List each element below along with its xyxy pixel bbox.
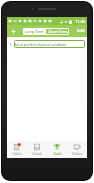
- staticText: Videos: [72, 152, 82, 156]
- staticText: Long Term: [25, 29, 44, 34]
- button[interactable]: Videos: [67, 141, 87, 158]
- button[interactable]: Habits: [7, 141, 27, 158]
- button[interactable]: Goals: [47, 141, 67, 158]
- staticText: 1.: [9, 42, 13, 48]
- staticText: 0/5: [80, 45, 84, 48]
- staticText: Edit: [77, 28, 85, 34]
- staticText: Short Term: [48, 29, 68, 34]
- button[interactable]: Short Term: [46, 28, 69, 35]
- staticText: Goals: [53, 152, 62, 156]
- staticText: Habits: [12, 152, 22, 156]
- button[interactable]: 1.: [8, 40, 85, 48]
- staticText: be in perfect physical condition (Weight…: [15, 42, 84, 47]
- button[interactable]: Edit: [76, 26, 86, 36]
- button[interactable]: Graph: [27, 141, 47, 158]
- button[interactable]: Long Term: [23, 28, 46, 35]
- staticText: 11:06: [75, 19, 86, 24]
- staticText: Graph: [32, 152, 42, 156]
- button[interactable]: Add goal: [7, 25, 19, 37]
